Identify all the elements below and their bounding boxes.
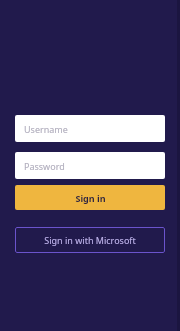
staticText: Sign in — [75, 192, 106, 204]
staticText: Username — [24, 123, 68, 135]
button[interactable]: Sign in — [15, 185, 165, 210]
staticText: Password — [24, 160, 65, 172]
button[interactable]: Password — [15, 152, 165, 179]
button[interactable]: Username — [15, 115, 165, 142]
staticText: Sign in with Microsoft — [44, 234, 136, 246]
button[interactable]: Sign in with Microsoft — [15, 227, 165, 253]
